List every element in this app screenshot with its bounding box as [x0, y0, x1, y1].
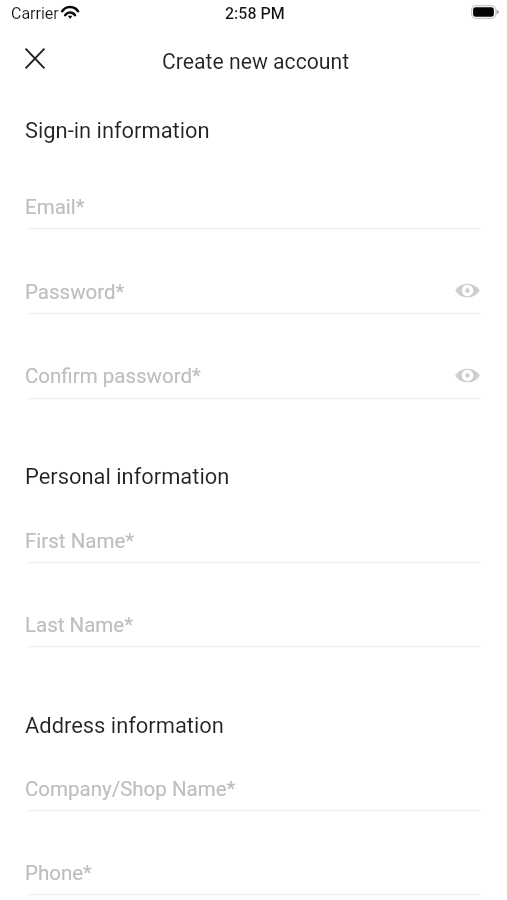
staticText: First Name* — [25, 529, 135, 553]
button[interactable]: Show password — [451, 274, 483, 306]
staticText: Create new account — [162, 49, 350, 74]
button[interactable] — [27, 269, 481, 314]
button[interactable] — [27, 354, 481, 399]
staticText: Phone* — [25, 861, 92, 885]
staticText: Company/Shop Name* — [25, 777, 236, 801]
button[interactable] — [27, 766, 481, 811]
staticText: Password* — [25, 280, 125, 304]
staticText: Carrier — [11, 4, 59, 23]
staticText: Address information — [25, 713, 224, 739]
staticText: Personal information — [25, 464, 230, 490]
button[interactable] — [27, 850, 481, 895]
staticText: Confirm password* — [25, 364, 201, 388]
staticText: Last Name* — [25, 613, 134, 637]
button[interactable] — [27, 602, 481, 647]
button[interactable]: Close — [13, 36, 57, 80]
staticText: Sign-in information — [25, 118, 210, 144]
button[interactable] — [27, 518, 481, 563]
staticText: Email* — [25, 195, 85, 219]
button[interactable]: Show password — [451, 359, 483, 391]
button[interactable] — [27, 184, 481, 229]
staticText: 2:58 PM — [225, 4, 285, 23]
